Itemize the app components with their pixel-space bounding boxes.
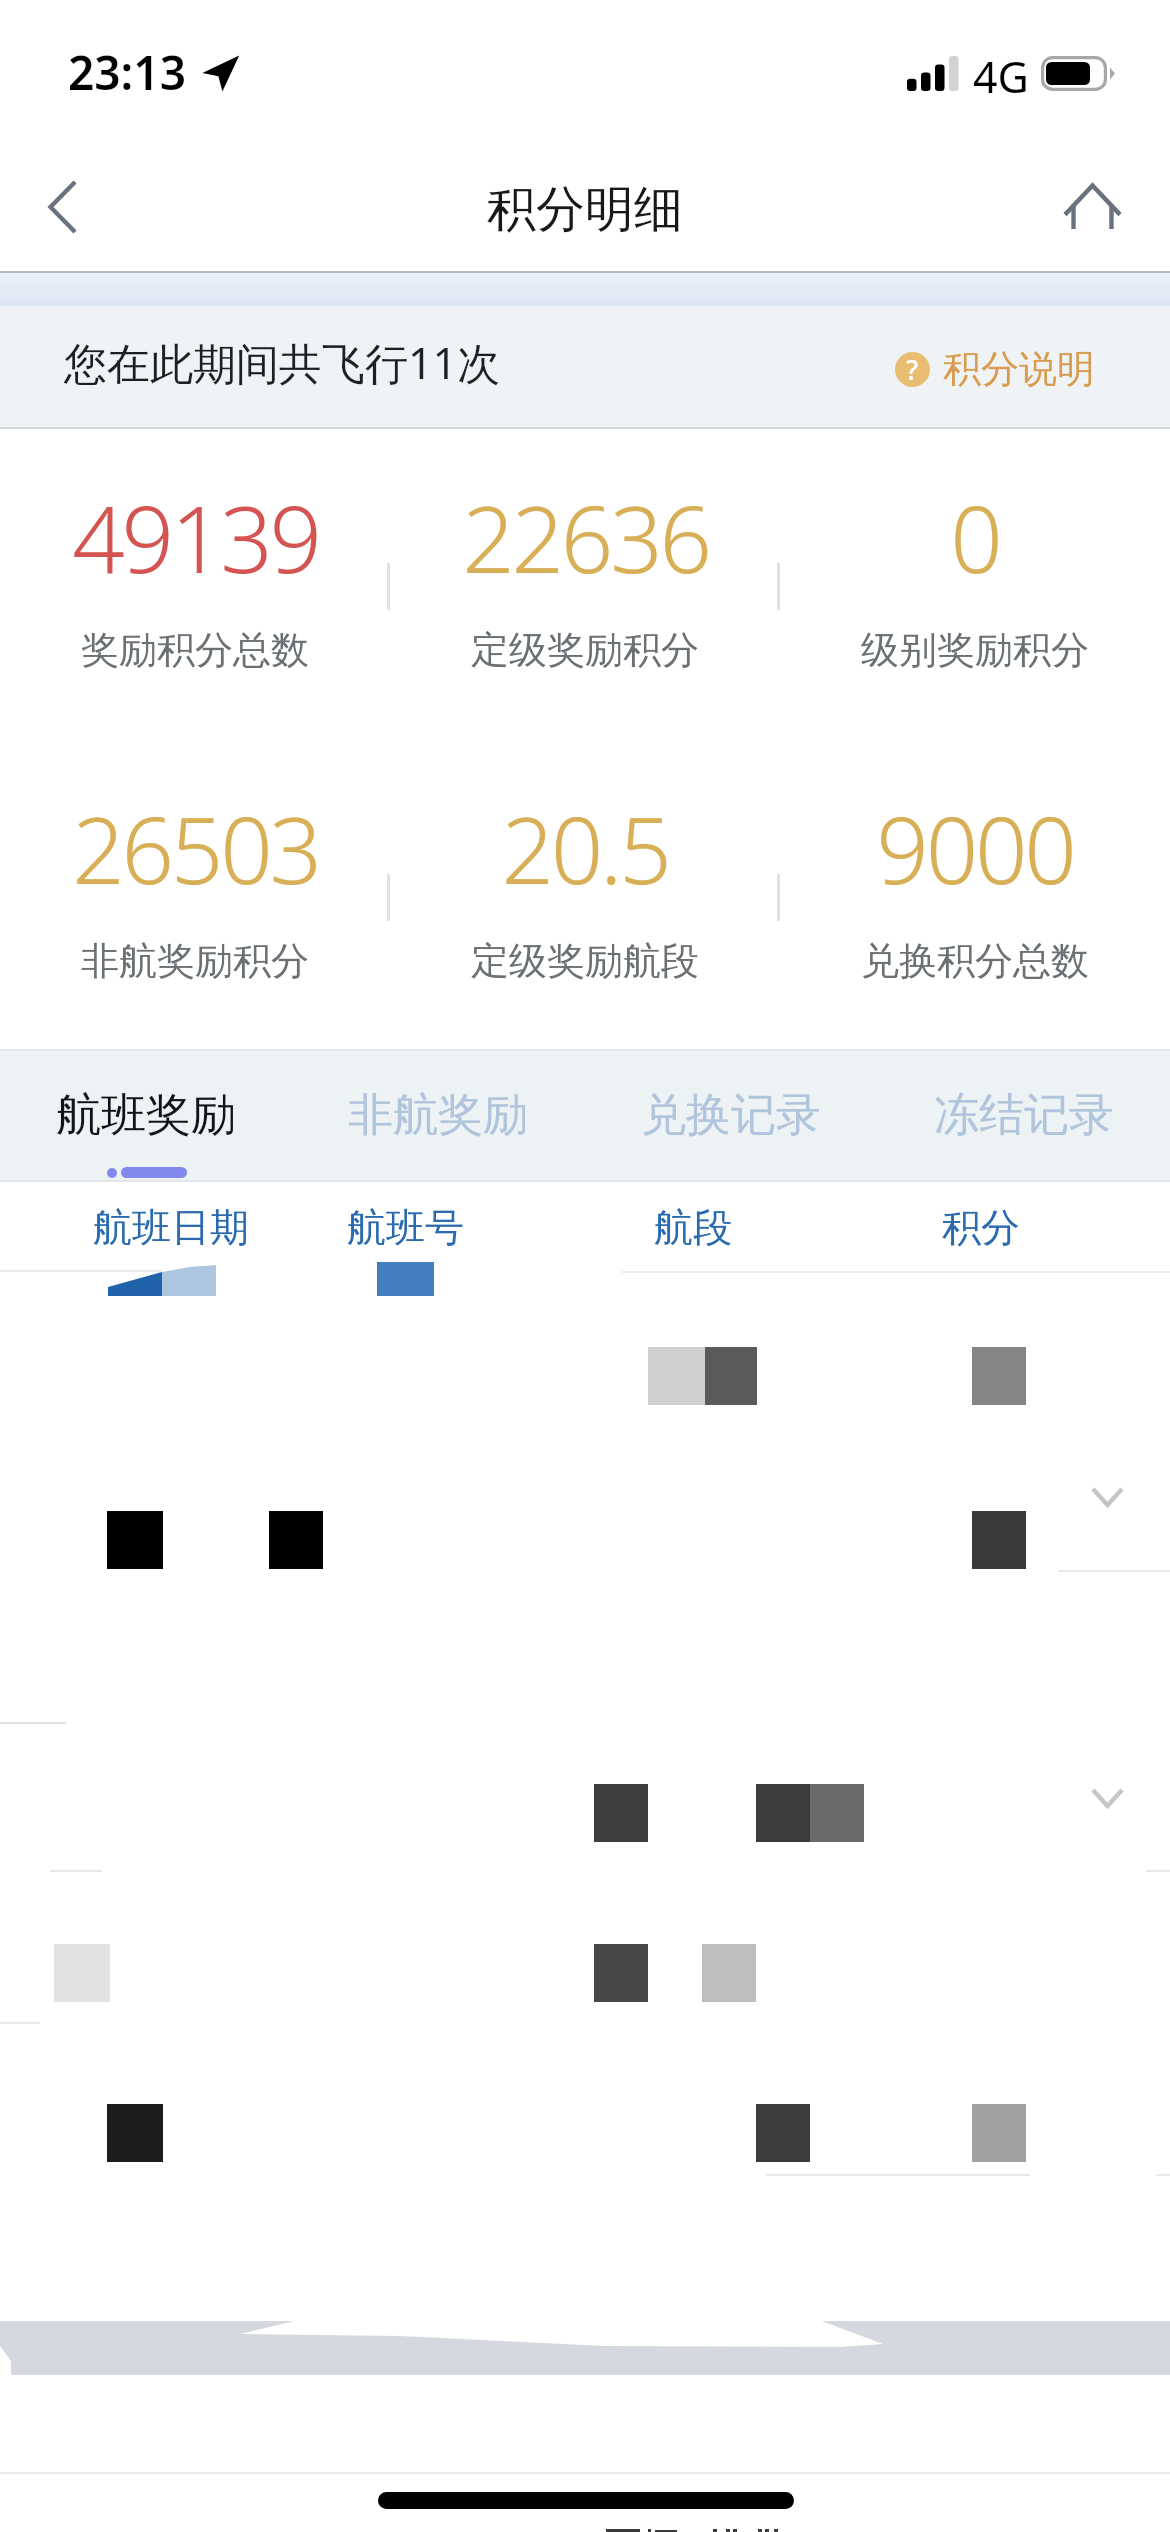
button[interactable]: 积分 [933,1192,1029,1302]
staticText: 积分 [942,1203,1020,1252]
staticText: 非航奖励 [348,1087,528,1144]
staticText: 定级奖励积分 [471,626,699,674]
staticText: 奖励积分总数 [81,626,309,674]
staticText: 冻结记录 [934,1087,1114,1144]
button[interactable]: Home [1050,169,1135,244]
staticText: 非航奖励积分 [81,937,309,985]
button[interactable]: 航班日期 [88,1192,253,1302]
staticText: 兑换记录 [641,1087,821,1144]
staticText: 4G [973,47,1029,106]
staticText: 20.5 [501,786,669,911]
staticText: 兑换积分总数 [861,937,1089,985]
staticText: 定级奖励航段 [471,937,699,985]
button[interactable] [0,1572,1170,1870]
staticText: 航段 [654,1203,732,1252]
button[interactable]: 兑换记录 [584,1051,877,1180]
button[interactable]: 航班奖励 [0,1051,292,1180]
button[interactable]: 航段 [645,1192,741,1302]
staticText: 级别奖励积分 [861,626,1089,674]
button[interactable] [0,1310,1170,1572]
staticText: 49139 [72,475,319,600]
staticText: 积分说明 [943,345,1095,393]
staticText: 26503 [72,786,319,911]
staticText: 航班号 [347,1203,464,1252]
button[interactable]: 非航奖励 [292,1051,584,1180]
staticText: 0 [950,475,1000,600]
staticText: 您在此期间共飞行11次 [64,333,501,392]
button[interactable]: Back [21,166,102,247]
staticText: 航班奖励 [56,1087,236,1144]
button[interactable]: Expand row [1070,1478,1146,1554]
staticText: 23:13 [68,41,186,104]
button[interactable]: Expand row [1070,1779,1146,1855]
button[interactable]: 冻结记录 [877,1051,1170,1180]
button[interactable]: 航班号 [340,1192,470,1302]
button[interactable]: ? [895,345,1095,393]
staticText: 9000 [876,786,1074,911]
staticText: ? [906,352,919,386]
staticText: 22636 [462,475,709,600]
staticText: 航班日期 [93,1203,249,1252]
button[interactable] [0,1870,1170,2174]
staticText: 积分明细 [487,179,683,241]
